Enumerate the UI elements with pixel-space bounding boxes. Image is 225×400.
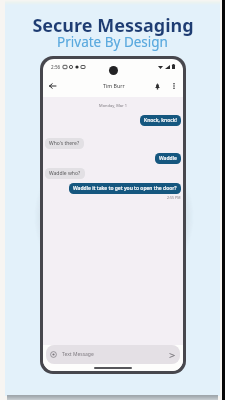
button[interactable]: Knock, knock!	[140, 115, 181, 126]
button[interactable]: Back	[45, 79, 59, 93]
button[interactable]: Notifications	[151, 80, 163, 92]
button[interactable]: Text Message	[46, 345, 180, 364]
button[interactable]: Waddle	[155, 153, 181, 164]
staticText: Waddle it take to get you to open the do…	[73, 185, 177, 192]
staticText: Private By Design	[57, 33, 168, 51]
staticText: Knock, knock!	[144, 117, 177, 124]
button[interactable]: Waddle it take to get you to open the do…	[69, 183, 181, 194]
staticText: 2:55 PM	[167, 195, 181, 200]
staticText: Waddle who?	[49, 170, 81, 177]
staticText: Monday, Mar 1	[99, 103, 128, 108]
button[interactable]: More options	[168, 80, 179, 91]
staticText: Waddle	[159, 155, 177, 162]
staticText: Who's there?	[49, 140, 80, 147]
staticText: Secure Messaging	[32, 13, 194, 38]
staticText: Tim Burr	[103, 82, 125, 89]
button[interactable]: Who's there?	[45, 138, 84, 149]
staticText: 2:56	[51, 64, 61, 70]
button[interactable]: Waddle who?	[45, 168, 85, 179]
staticText: Text Message	[62, 351, 94, 358]
button[interactable]: Send	[168, 351, 176, 359]
